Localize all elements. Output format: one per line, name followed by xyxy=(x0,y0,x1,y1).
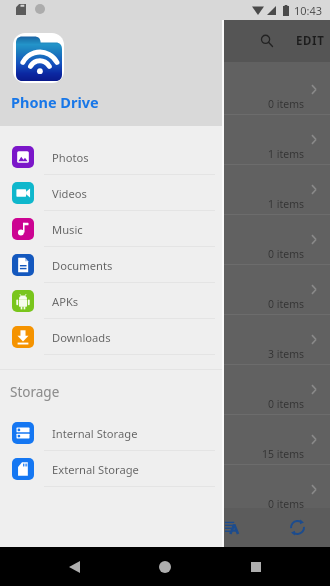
button[interactable]: 0 items xyxy=(0,365,330,415)
staticText: Videos xyxy=(52,186,87,201)
button[interactable]: Documents xyxy=(0,247,222,283)
staticText: 15 items xyxy=(262,447,305,461)
staticText: 0 items xyxy=(268,247,305,261)
staticText: APKs xyxy=(52,294,79,309)
staticText: External Storage xyxy=(52,462,139,477)
staticText: Storage xyxy=(10,383,60,401)
staticText: 0 items xyxy=(268,397,305,411)
button[interactable]: 0 items xyxy=(0,65,330,115)
staticText: 10:43 xyxy=(294,3,323,18)
button[interactable]: Music xyxy=(0,211,222,247)
staticText: Downloads xyxy=(52,330,111,345)
staticText: EDIT xyxy=(296,33,325,49)
button[interactable]: EDIT xyxy=(288,20,330,62)
button[interactable]: Refresh xyxy=(277,508,317,547)
staticText: Music xyxy=(52,222,83,237)
button[interactable]: 1 items xyxy=(0,115,330,165)
button[interactable]: Photos xyxy=(0,139,222,175)
button[interactable]: Sort by name xyxy=(212,508,252,547)
staticText: 0 items xyxy=(268,97,305,111)
button[interactable]: Videos xyxy=(0,175,222,211)
button[interactable]: Internal Storage xyxy=(0,415,222,451)
button[interactable]: 1 items xyxy=(0,165,330,215)
staticText: 3 items xyxy=(268,347,305,361)
staticText: Photos xyxy=(52,150,89,165)
staticText: 0 items xyxy=(268,297,305,311)
button[interactable]: Back xyxy=(57,550,91,584)
button[interactable]: Recents xyxy=(239,550,273,584)
staticText: 1 items xyxy=(268,197,305,211)
staticText: 1 items xyxy=(268,147,305,161)
button[interactable]: Downloads xyxy=(0,319,222,355)
button[interactable]: Search xyxy=(248,20,286,62)
button[interactable]: 0 items xyxy=(0,215,330,265)
button[interactable]: 0 items xyxy=(0,265,330,315)
staticText: Internal Storage xyxy=(52,426,138,441)
button[interactable]: Home xyxy=(148,550,182,584)
staticText: Phone Drive xyxy=(11,92,99,112)
button[interactable]: APKs xyxy=(0,283,222,319)
button[interactable]: 3 items xyxy=(0,315,330,365)
button[interactable]: External Storage xyxy=(0,451,222,487)
button[interactable]: 0 items xyxy=(0,465,330,511)
staticText: 0 items xyxy=(268,497,305,511)
button[interactable]: 15 items xyxy=(0,415,330,465)
staticText: Documents xyxy=(52,258,113,273)
